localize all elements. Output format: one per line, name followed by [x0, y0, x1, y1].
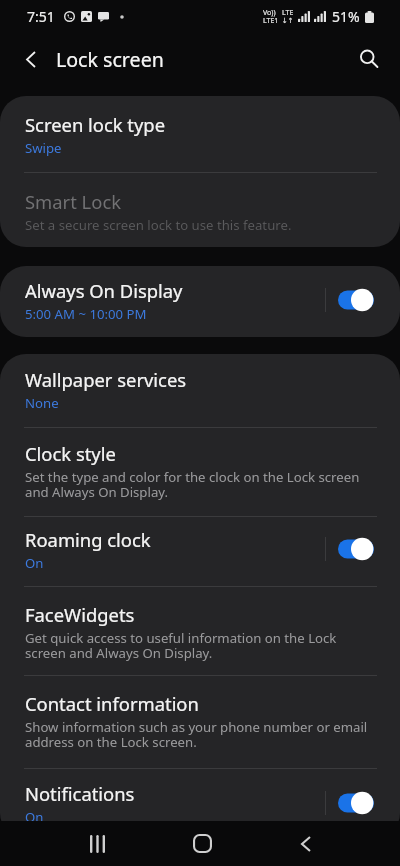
staticText: Wallpaper services — [25, 367, 187, 392]
staticText: Set the type and color for the clock on … — [25, 468, 370, 501]
button[interactable]: Navigate up — [0, 35, 52, 83]
button[interactable]: Roaming clock — [0, 517, 400, 586]
button[interactable]: Back — [254, 821, 358, 866]
staticText: Get quick access to useful information o… — [25, 629, 370, 662]
staticText: 7:51 — [27, 7, 55, 26]
staticText: FaceWidgets — [25, 602, 135, 627]
button[interactable]: Screen lock type — [0, 96, 400, 172]
staticText: Notifications — [25, 781, 135, 806]
staticText: Clock style — [25, 441, 116, 466]
staticText: Smart Lock — [25, 189, 122, 214]
button[interactable]: Smart Lock — [0, 173, 400, 247]
button[interactable]: Home — [150, 821, 254, 866]
staticText: 51% — [332, 7, 360, 26]
staticText: Swipe — [25, 139, 370, 157]
staticText: Vo)) LTE1 — [263, 8, 279, 25]
staticText: 5:00 AM ~ 10:00 PM — [25, 305, 321, 323]
staticText: Show information such as your phone numb… — [25, 718, 370, 751]
button[interactable]: Wallpaper services — [0, 354, 400, 427]
staticText: Roaming clock — [25, 527, 151, 552]
button[interactable]: Toggle on — [338, 791, 374, 815]
button[interactable]: Recent apps — [45, 821, 150, 866]
button[interactable]: Notifications — [0, 769, 400, 839]
button[interactable]: Toggle on — [338, 288, 374, 312]
staticText: Contact information — [25, 691, 199, 716]
staticText: Lock screen — [56, 46, 164, 73]
button[interactable]: Always On Display — [0, 266, 400, 337]
button[interactable]: Contact information — [0, 676, 400, 768]
button[interactable]: Clock style — [0, 428, 400, 516]
button[interactable]: FaceWidgets — [0, 587, 400, 675]
staticText: Set a secure screen lock to use this fea… — [25, 216, 370, 234]
button[interactable]: Search — [345, 35, 393, 83]
staticText: None — [25, 394, 370, 412]
staticText: LTE ↓↑ — [282, 8, 294, 25]
button[interactable]: Toggle on — [338, 537, 374, 561]
staticText: On — [25, 808, 321, 826]
staticText: Always On Display — [25, 278, 183, 303]
staticText: Screen lock type — [25, 112, 166, 137]
staticText: On — [25, 554, 321, 572]
